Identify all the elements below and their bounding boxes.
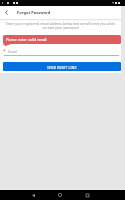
staticText: *: [3, 48, 6, 54]
staticText: Enter your registered email address belo…: [5, 21, 116, 30]
button[interactable]: Navigate back: [0, 6, 13, 19]
button[interactable]: Please enter valid email: [3, 35, 121, 44]
button[interactable]: SEND RESET LINK: [3, 62, 121, 71]
staticText: Email: [8, 49, 17, 54]
staticText: Please enter valid email: [6, 37, 47, 42]
button[interactable]: *: [0, 48, 121, 56]
staticText: Forgot Password: [17, 10, 51, 15]
button[interactable]: Back: [28, 190, 38, 200]
button[interactable]: Home: [55, 190, 65, 200]
button[interactable]: Recent apps: [82, 190, 92, 200]
staticText: SEND RESET LINK: [47, 65, 77, 69]
